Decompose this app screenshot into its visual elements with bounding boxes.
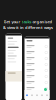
staticText: Get your [3, 19, 20, 24]
staticText: & view it in different ways [3, 25, 53, 30]
staticText: organised [32, 19, 52, 24]
staticText: tasks [21, 19, 31, 24]
